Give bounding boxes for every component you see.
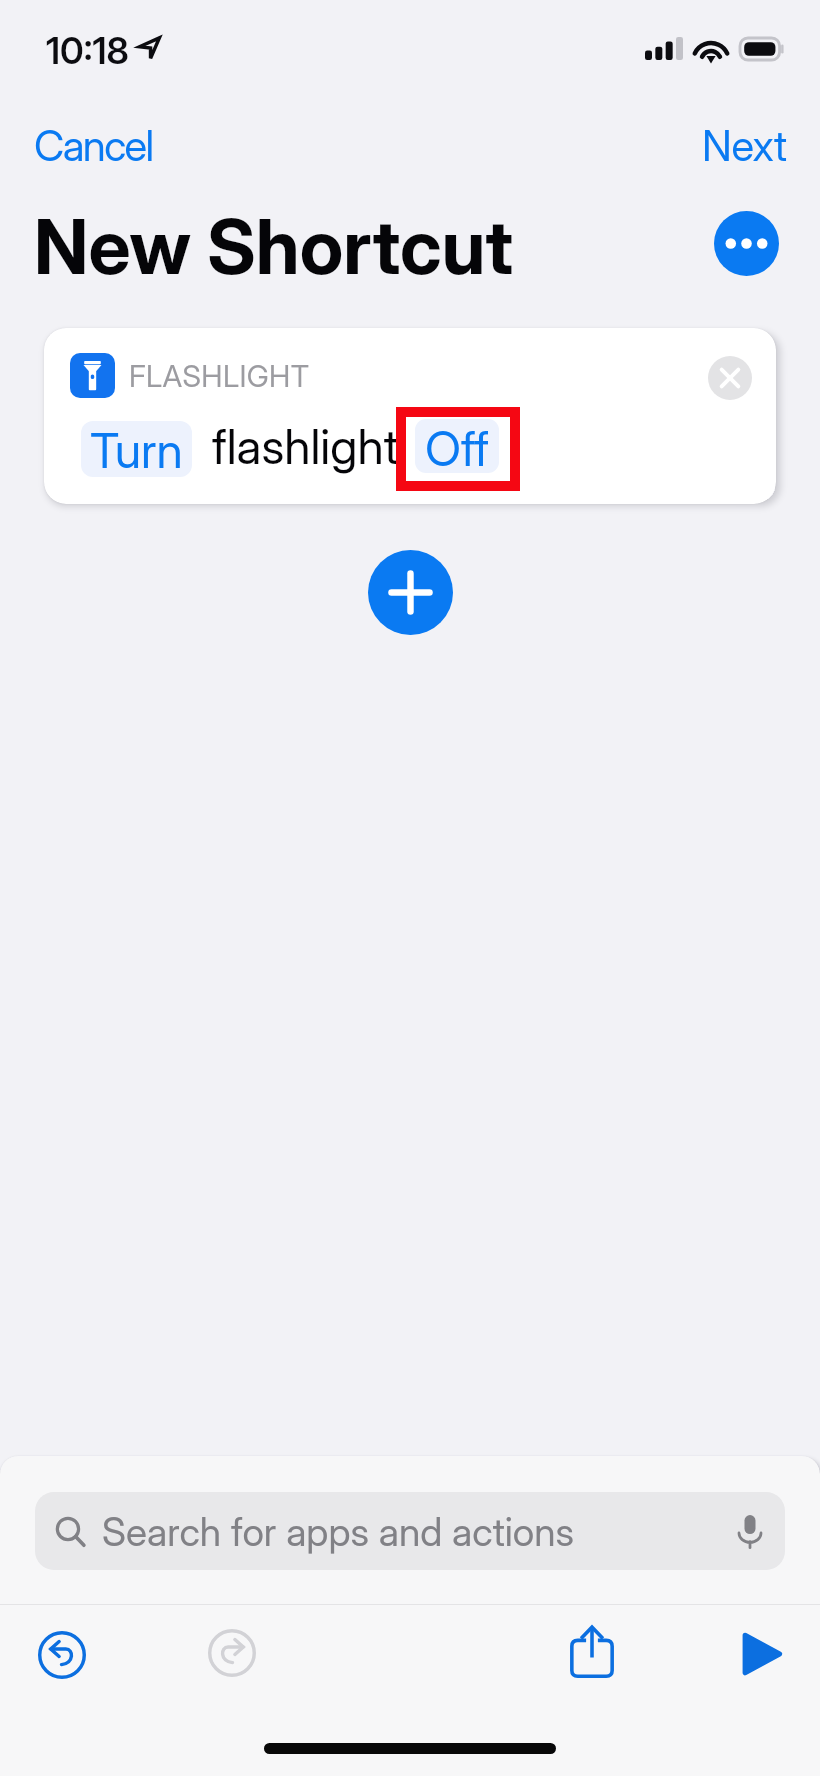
button[interactable]: Turn [81,421,192,477]
button[interactable]: Remove action [708,356,752,400]
staticText: New Shortcut [34,201,514,292]
button[interactable]: Share [560,1620,624,1684]
button[interactable]: Undo [30,1623,94,1687]
staticText: Off [425,419,489,473]
button[interactable]: Next [684,112,805,179]
staticText: flashlight [212,417,399,475]
button[interactable]: Voice search [729,1510,771,1552]
staticText: Next [702,120,787,171]
button[interactable]: FLASHLIGHT [44,328,776,504]
staticText: Turn [90,421,183,477]
button[interactable]: Off [415,419,499,473]
button[interactable]: Search for apps and actions [35,1492,785,1570]
button[interactable]: Add action [368,550,453,635]
staticText: 10:18 [46,28,129,73]
button[interactable]: More options [714,211,779,276]
staticText: Search for apps and actions [102,1508,575,1555]
staticText: Cancel [34,120,153,171]
button[interactable]: Run [730,1622,794,1686]
staticText: FLASHLIGHT [129,358,310,394]
button[interactable]: Cancel [16,112,171,179]
button[interactable]: Redo [200,1621,264,1685]
